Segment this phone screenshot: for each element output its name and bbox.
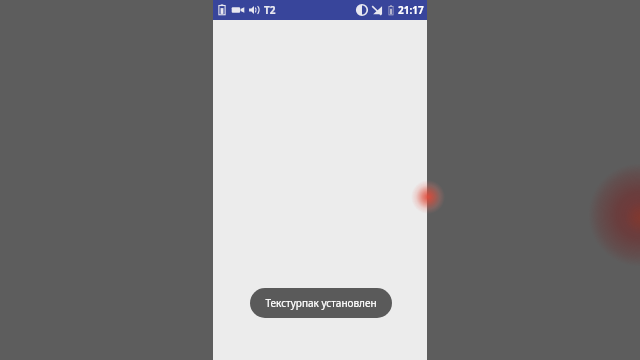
other: Do not disturb [356,4,368,16]
staticText: Текстурпак установлен [265,296,377,310]
other: Battery saver [216,3,228,17]
other: Volume [248,3,261,17]
other: Battery [387,4,395,17]
staticText: T2 [264,3,276,17]
button[interactable]: Текстурпак установлен [250,288,392,318]
other: No signal [371,4,383,16]
staticText: 21:17 [398,3,424,17]
other: Screen recording [231,3,245,17]
